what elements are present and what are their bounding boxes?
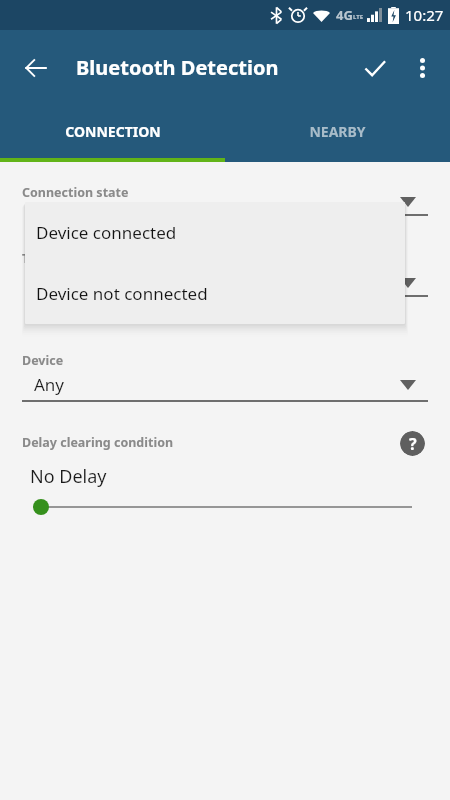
button[interactable]: Device not connected [25,263,405,324]
staticText: 4G [336,6,353,24]
button[interactable]: Any [0,367,450,407]
staticText: Device not connected [36,282,208,305]
button[interactable]: NEARBY [225,105,450,158]
button[interactable]: More options [400,46,444,90]
button[interactable]: Back [14,46,58,90]
staticText: No Delay [30,464,107,489]
button[interactable]: Help [400,431,425,456]
button[interactable]: Device connected [25,202,405,263]
staticText: Bluetooth Detection [76,54,279,81]
button[interactable]: CONNECTION [0,105,225,158]
staticText: Delay clearing condition [22,434,174,451]
staticText: ? [409,433,417,455]
staticText: Connection state [22,184,129,201]
staticText: LTE [353,13,364,21]
staticText: T [22,250,30,267]
staticText: Device [22,352,64,369]
staticText: NEARBY [309,122,366,141]
button[interactable]: Delay slider [0,492,450,522]
staticText: CONNECTION [65,122,161,141]
button[interactable]: Save [353,46,397,90]
staticText: Any [34,373,65,396]
staticText: Device connected [36,221,177,244]
staticText: 10:27 [405,5,444,25]
